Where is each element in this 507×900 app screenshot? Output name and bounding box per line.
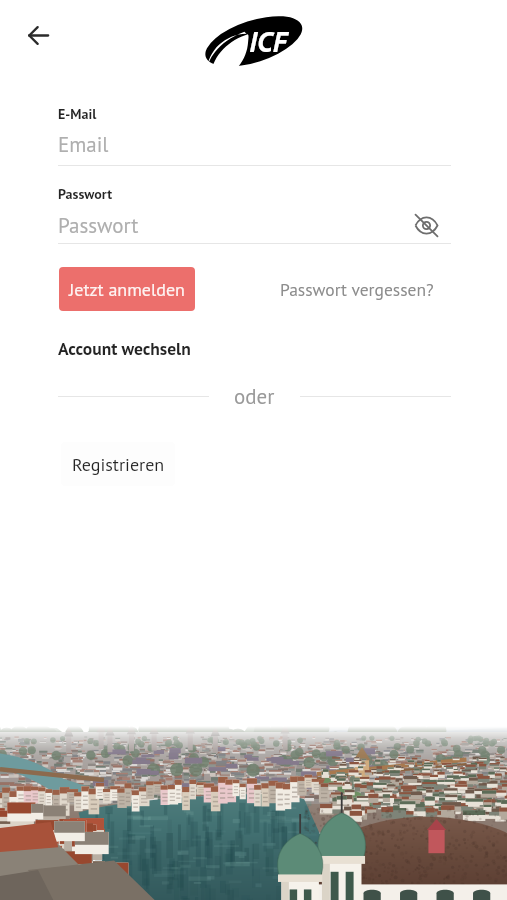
button[interactable]: Passwort vergessen?	[280, 278, 434, 301]
button[interactable]: Account wechseln	[58, 333, 191, 364]
staticText: Email	[58, 131, 109, 158]
staticText: Passwort vergessen?	[280, 278, 434, 301]
staticText: Registrieren	[72, 453, 165, 476]
staticText: Jetzt anmelden	[69, 278, 185, 301]
button[interactable]: Registrieren	[61, 442, 175, 486]
button[interactable]: Back	[22, 19, 55, 52]
staticText: E-Mail	[58, 105, 97, 123]
button[interactable]: Show password	[412, 211, 440, 239]
staticText: Passwort	[58, 185, 113, 203]
staticText: ICF	[249, 22, 287, 60]
button[interactable]: Jetzt anmelden	[59, 267, 195, 311]
staticText: oder	[234, 383, 275, 410]
staticText: Passwort	[58, 212, 423, 239]
staticText: Account wechseln	[58, 337, 191, 360]
